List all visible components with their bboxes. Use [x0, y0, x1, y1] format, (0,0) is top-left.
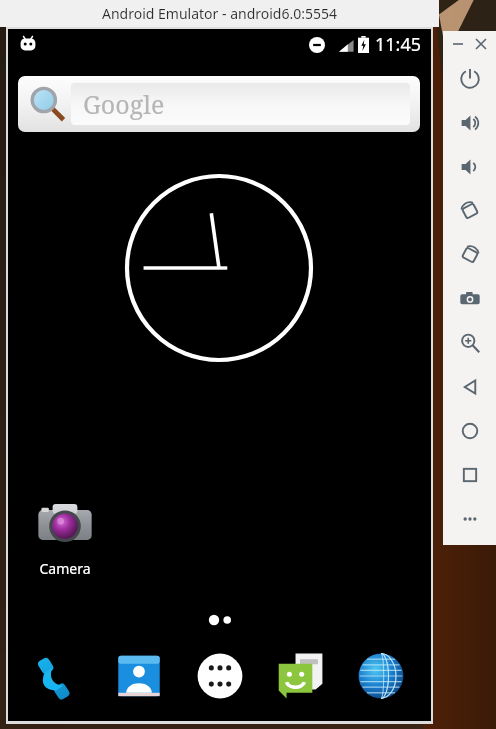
staticText: 11:45 — [375, 32, 422, 57]
button[interactable]: Zoom — [443, 321, 496, 365]
button[interactable]: Rotate right — [443, 233, 496, 277]
button[interactable]: Browser — [350, 645, 412, 707]
button[interactable]: Rotate left — [443, 189, 496, 233]
button[interactable]: Google — [18, 76, 420, 132]
button[interactable]: More — [443, 497, 496, 541]
button[interactable]: Power — [443, 57, 496, 101]
button[interactable]: Camera — [22, 494, 108, 578]
button[interactable]: Overview — [443, 453, 496, 497]
button[interactable]: Back — [443, 365, 496, 409]
staticText: Google — [83, 87, 165, 121]
staticText: Camera — [39, 559, 91, 578]
staticText: Android Emulator - android6.0:5554 — [102, 4, 337, 23]
button[interactable]: Minimise — [449, 35, 467, 53]
button[interactable]: Take screenshot — [443, 277, 496, 321]
button[interactable]: Contacts — [108, 645, 170, 707]
button[interactable]: Volume down — [443, 145, 496, 189]
button[interactable]: Close — [472, 35, 490, 53]
button[interactable]: Clock — [124, 173, 314, 363]
button[interactable]: Volume up — [443, 101, 496, 145]
button[interactable]: Messaging — [269, 645, 331, 707]
button[interactable]: Apps — [189, 645, 251, 707]
button[interactable]: Phone — [27, 645, 89, 707]
button[interactable]: Home — [443, 409, 496, 453]
